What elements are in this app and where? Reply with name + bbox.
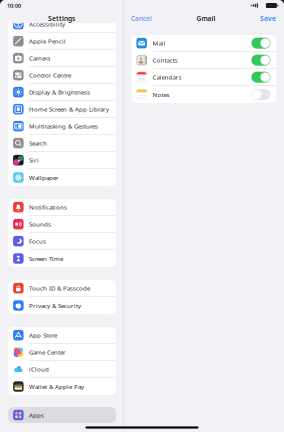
staticText: Settings — [48, 14, 75, 23]
staticText: Focus — [29, 237, 46, 245]
staticText: Screen Time — [29, 254, 63, 263]
staticText: Game Center — [29, 348, 66, 356]
staticText: Control Centre — [29, 71, 71, 79]
button[interactable]: Multitasking & Gestures — [8, 118, 116, 135]
button[interactable]: Mail — [131, 35, 276, 52]
staticText: Wallet & Apple Pay — [29, 382, 84, 391]
button[interactable]: iCloud — [8, 361, 116, 378]
button[interactable]: Calendars — [131, 69, 276, 86]
button[interactable]: Game Center — [8, 344, 116, 361]
button[interactable]: Sounds — [8, 216, 116, 233]
button[interactable]: Wallpaper — [8, 169, 116, 186]
staticText: Calendars — [152, 73, 181, 81]
staticText: Display & Brightness — [29, 88, 90, 96]
staticText: Mail — [152, 39, 165, 47]
staticText: 10:00 — [7, 2, 21, 9]
button[interactable]: Wallet & Apple Pay — [8, 378, 116, 395]
button[interactable]: Contacts — [131, 52, 276, 69]
button[interactable]: Focus — [8, 233, 116, 250]
button[interactable]: Apple Pencil — [8, 33, 116, 50]
staticText: Save — [260, 14, 276, 23]
staticText: Multitasking & Gestures — [29, 122, 98, 130]
staticText: Privacy & Security — [29, 301, 81, 310]
button[interactable]: Home Screen & App Library — [8, 101, 116, 118]
button[interactable]: Search — [8, 135, 116, 152]
staticText: App Store — [29, 331, 57, 339]
button[interactable]: Accessibility — [8, 16, 116, 33]
button[interactable]: Screen Time — [8, 250, 116, 267]
button[interactable]: Control Centre — [8, 67, 116, 84]
staticText: Camera — [29, 54, 50, 62]
button[interactable]: Save — [257, 11, 284, 26]
staticText: Siri — [29, 156, 39, 164]
staticText: Apple Pencil — [29, 37, 66, 45]
button[interactable]: Camera — [8, 50, 116, 67]
button[interactable]: Privacy & Security — [8, 297, 116, 314]
staticText: Home Screen & App Library — [29, 105, 109, 113]
staticText: Touch ID & Passcode — [29, 284, 90, 292]
staticText: iCloud — [29, 365, 49, 373]
button[interactable]: Notes — [131, 86, 276, 103]
staticText: Cancel — [131, 14, 152, 23]
staticText: Notifications — [29, 203, 67, 211]
button[interactable]: Cancel — [124, 11, 155, 26]
staticText: Notes — [152, 90, 169, 99]
button[interactable]: Touch ID & Passcode — [8, 280, 116, 297]
staticText: Wallpaper — [29, 173, 59, 182]
button[interactable]: Siri — [8, 152, 116, 169]
staticText: Accessibility — [29, 20, 65, 28]
staticText: Apps — [29, 411, 44, 419]
staticText: Contacts — [152, 56, 177, 64]
staticText: Search — [29, 139, 47, 147]
button[interactable]: Display & Brightness — [8, 84, 116, 101]
button[interactable]: Notifications — [8, 199, 116, 216]
button[interactable]: App Store — [8, 327, 116, 344]
staticText: Sounds — [29, 220, 51, 228]
button[interactable]: Apps — [8, 407, 116, 423]
staticText: Gmail — [196, 14, 215, 23]
